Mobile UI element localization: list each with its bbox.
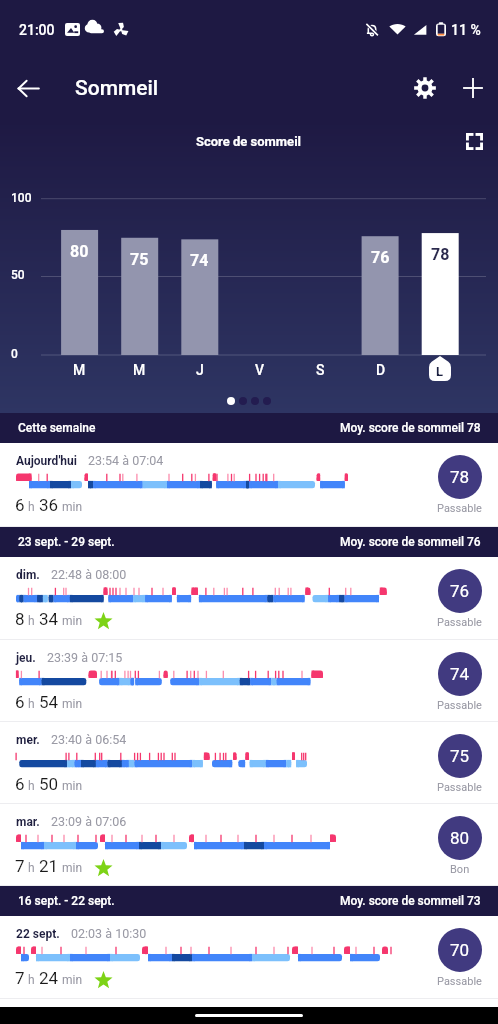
staticText: h: [28, 614, 35, 628]
staticText: 21:00: [19, 22, 55, 38]
button[interactable]: Fullscreen: [462, 129, 486, 153]
staticText: 76: [371, 248, 390, 267]
button[interactable]: dim.: [0, 557, 498, 640]
staticText: Passable: [437, 699, 482, 712]
staticText: 22:48 à 08:00: [51, 567, 127, 582]
staticText: 0: [11, 347, 18, 361]
staticText: 16 sept. - 22 sept.: [18, 894, 115, 908]
staticText: Moy. score de sommeil 78: [340, 421, 481, 435]
staticText: S: [316, 362, 325, 378]
staticText: min: [62, 500, 83, 514]
staticText: h: [28, 779, 35, 793]
staticText: 21: [39, 856, 59, 876]
staticText: Moy. score de sommeil 73: [340, 894, 481, 908]
staticText: 8: [15, 609, 25, 629]
button[interactable]: mer.: [0, 722, 498, 804]
staticText: Cette semaine: [18, 421, 96, 435]
staticText: 78: [450, 467, 470, 487]
staticText: 34: [39, 609, 59, 629]
staticText: 78: [431, 245, 450, 264]
button[interactable]: mar.: [0, 804, 498, 886]
staticText: 80: [450, 828, 470, 848]
staticText: h: [28, 861, 35, 875]
staticText: 23:54 à 07:04: [88, 453, 164, 468]
staticText: Sommeil: [75, 76, 159, 101]
staticText: Score de sommeil: [196, 134, 302, 149]
staticText: 80: [70, 242, 89, 261]
staticText: D: [376, 362, 386, 378]
button[interactable]: Add: [449, 64, 497, 112]
button[interactable]: 22 sept.: [0, 916, 498, 999]
staticText: h: [28, 973, 35, 987]
staticText: 23:39 à 07:15: [47, 650, 123, 665]
staticText: J: [196, 362, 204, 378]
staticText: min: [62, 861, 83, 875]
staticText: min: [62, 779, 83, 793]
staticText: mar.: [16, 815, 40, 829]
staticText: 7: [15, 856, 25, 876]
staticText: 50: [39, 774, 59, 794]
button[interactable]: Settings: [401, 64, 449, 112]
staticText: 22 sept.: [16, 927, 60, 941]
staticText: 6: [15, 692, 25, 712]
staticText: 70: [450, 940, 470, 960]
staticText: dim.: [16, 568, 40, 582]
staticText: 23 sept. - 29 sept.: [18, 535, 115, 549]
staticText: V: [255, 362, 265, 378]
staticText: h: [28, 500, 35, 514]
staticText: min: [62, 697, 83, 711]
staticText: 50: [11, 268, 25, 282]
button[interactable]: Aujourd'hui: [0, 443, 498, 527]
staticText: 36: [39, 495, 59, 515]
staticText: 100: [11, 191, 32, 205]
staticText: Aujourd'hui: [16, 454, 77, 468]
staticText: mer.: [16, 733, 40, 747]
staticText: Passable: [437, 781, 482, 794]
staticText: Bon: [450, 863, 470, 876]
staticText: 23:09 à 07:06: [51, 814, 127, 829]
staticText: min: [62, 973, 83, 987]
staticText: 75: [450, 746, 470, 766]
staticText: 54: [39, 692, 59, 712]
button[interactable]: Back: [0, 60, 56, 116]
staticText: Passable: [437, 616, 482, 629]
staticText: M: [73, 362, 86, 378]
staticText: Moy. score de sommeil 76: [340, 535, 481, 549]
staticText: jeu.: [16, 651, 36, 665]
staticText: Passable: [437, 975, 482, 988]
staticText: 75: [130, 250, 149, 269]
staticText: 76: [450, 581, 470, 601]
staticText: 6: [15, 774, 25, 794]
staticText: 7: [15, 968, 25, 988]
staticText: Passable: [437, 502, 482, 515]
staticText: 02:03 à 10:30: [71, 926, 147, 941]
staticText: min: [62, 614, 83, 628]
staticText: 74: [190, 251, 209, 270]
staticText: 24: [39, 968, 59, 988]
staticText: 23:40 à 06:54: [51, 732, 127, 747]
staticText: 74: [450, 664, 470, 684]
staticText: M: [133, 362, 146, 378]
staticText: L: [436, 364, 444, 379]
button[interactable]: jeu.: [0, 640, 498, 722]
staticText: 6: [15, 495, 25, 515]
staticText: h: [28, 697, 35, 711]
staticText: 11 %: [451, 22, 481, 38]
